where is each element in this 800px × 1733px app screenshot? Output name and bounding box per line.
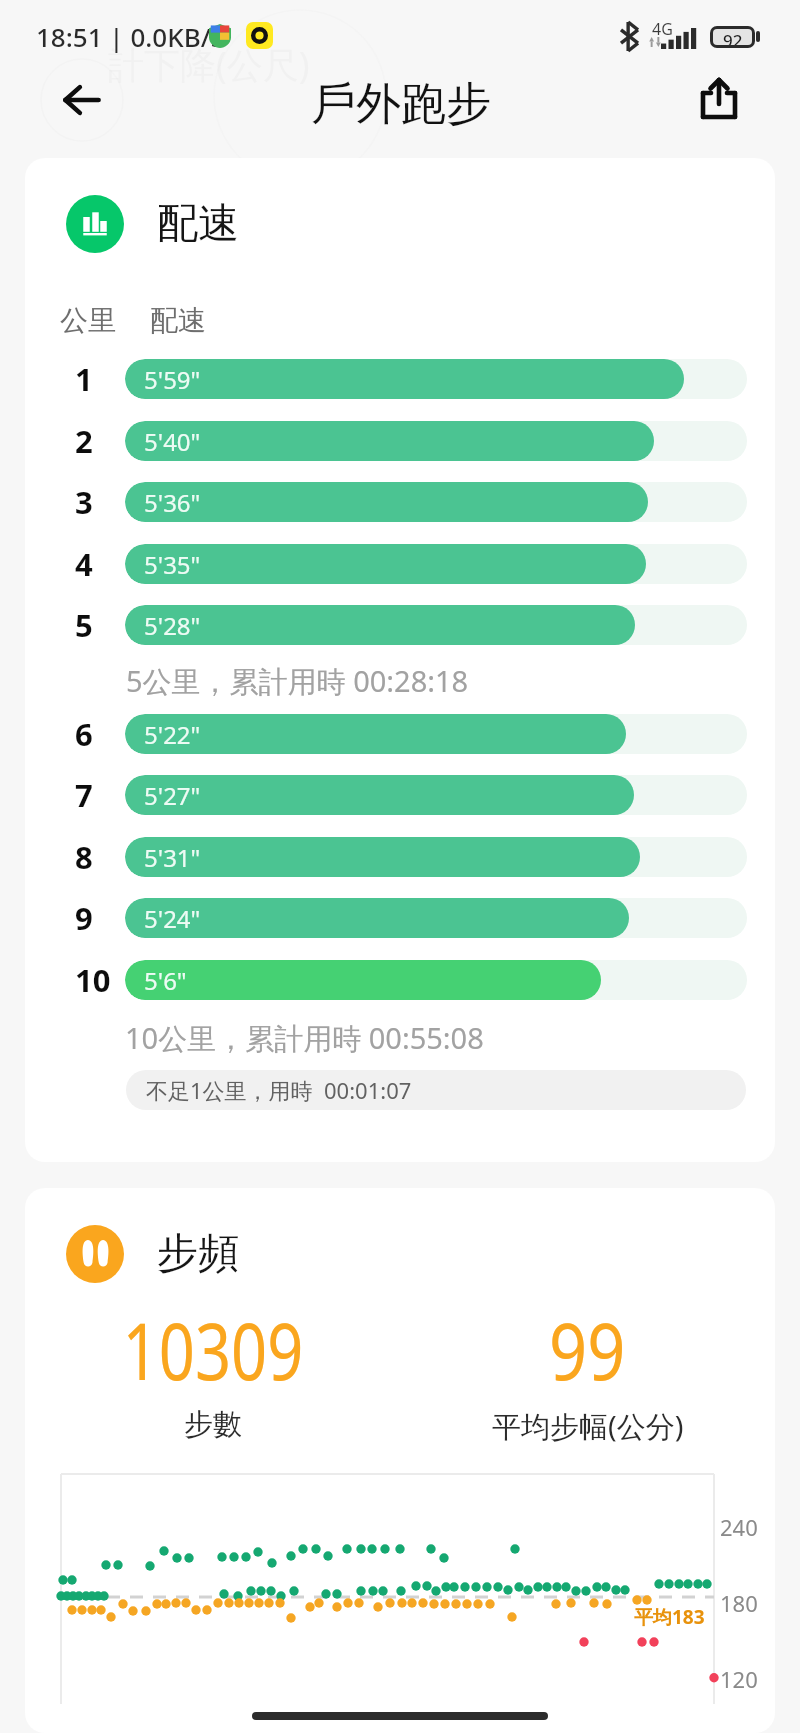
staticText: 5'31" xyxy=(144,841,201,874)
staticText: 5'6" xyxy=(144,964,187,997)
staticText: 18:51 | 0.0KB/s xyxy=(36,19,224,54)
button[interactable]: 2 xyxy=(25,411,775,471)
staticText: 5'28" xyxy=(144,609,201,642)
staticText: 1 xyxy=(75,358,93,400)
button[interactable]: Share xyxy=(683,62,755,134)
staticText: 平均步幅(公分) xyxy=(492,1406,684,1446)
button[interactable]: 10 xyxy=(25,950,775,1010)
staticText: 配速 xyxy=(150,303,206,338)
staticText: 180 xyxy=(720,1588,758,1618)
staticText: 公里 xyxy=(60,303,116,338)
button[interactable]: 3 xyxy=(25,472,775,532)
staticText: 99 xyxy=(549,1296,626,1404)
staticText: 5'35" xyxy=(144,548,201,581)
staticText: 5 xyxy=(75,604,93,646)
staticText: 92 xyxy=(723,29,743,45)
staticText: 不足1公里，用時 00:01:07 xyxy=(146,1075,412,1105)
staticText: 步頻 xyxy=(157,1228,239,1280)
staticText: 240 xyxy=(720,1512,758,1542)
staticText: 2 xyxy=(75,420,93,462)
staticText: 6 xyxy=(75,713,93,755)
button[interactable]: 6 xyxy=(25,704,775,764)
button[interactable]: 9 xyxy=(25,888,775,948)
button[interactable]: 1 xyxy=(25,349,775,409)
staticText: 9 xyxy=(75,897,93,939)
staticText: 步數 xyxy=(184,1406,242,1443)
staticText: 8 xyxy=(75,836,93,878)
staticText: 計下降(公尺) xyxy=(108,40,310,89)
staticText: 10309 xyxy=(123,1296,303,1404)
staticText: 7 xyxy=(75,774,93,816)
staticText: 120 xyxy=(720,1664,758,1694)
staticText: 配速 xyxy=(157,198,239,250)
staticText: 5'24" xyxy=(144,902,201,935)
button[interactable]: 8 xyxy=(25,827,775,887)
staticText: 10 xyxy=(75,959,111,1001)
button[interactable]: 4 xyxy=(25,534,775,594)
staticText: 3 xyxy=(75,481,93,523)
staticText: 5'36" xyxy=(144,486,201,519)
staticText: 戶外跑步 xyxy=(311,76,491,133)
button[interactable]: 5 xyxy=(25,595,775,655)
button[interactable]: 7 xyxy=(25,765,775,825)
button[interactable]: Back xyxy=(46,64,118,136)
staticText: 4 xyxy=(75,543,93,585)
staticText: 5公里，累計用時 00:28:18 xyxy=(126,661,469,701)
staticText: 4G xyxy=(652,18,673,40)
staticText: 5'27" xyxy=(144,779,201,812)
staticText: 5'22" xyxy=(144,718,201,751)
staticText: 平均183 xyxy=(634,1604,705,1630)
staticText: 5'59" xyxy=(144,363,201,396)
staticText: 5'40" xyxy=(144,425,201,458)
staticText: 10公里，累計用時 00:55:08 xyxy=(125,1018,484,1058)
